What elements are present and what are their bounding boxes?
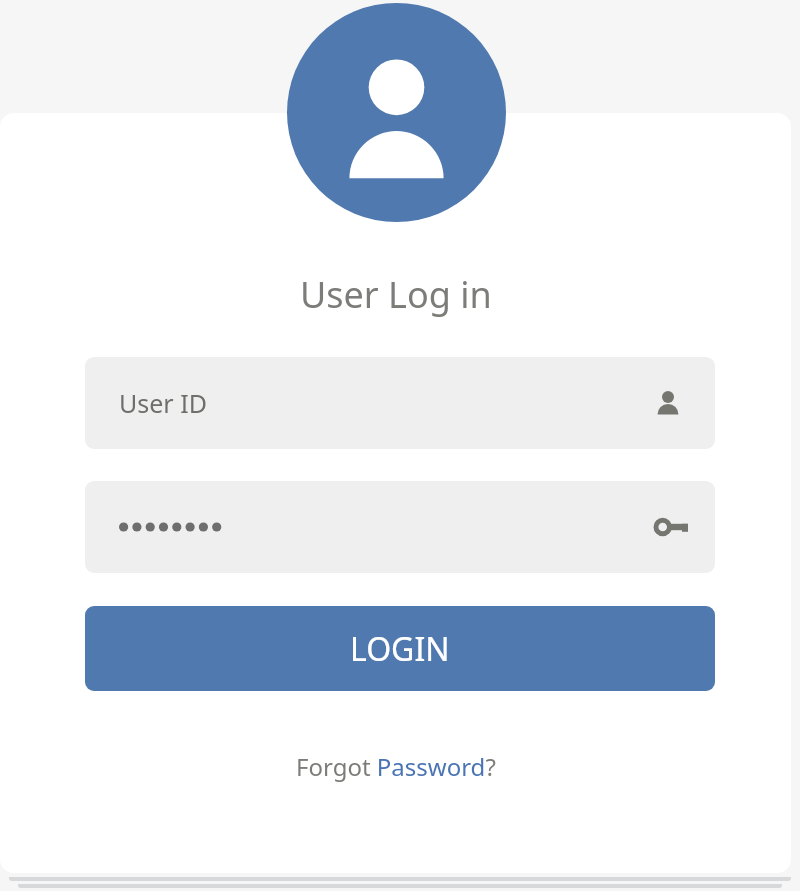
staticText: Forgot Password? — [296, 750, 496, 783]
staticText: LOGIN — [350, 627, 450, 671]
other: Password — [653, 512, 689, 542]
button[interactable]: Password — [85, 481, 715, 573]
staticText: User Log in — [300, 270, 492, 319]
staticText: User ID — [119, 386, 207, 420]
other: User account — [653, 388, 683, 418]
button[interactable]: Forgot Password? — [296, 750, 496, 783]
button[interactable]: User ID — [85, 357, 715, 449]
button[interactable]: LOGIN — [85, 606, 715, 691]
